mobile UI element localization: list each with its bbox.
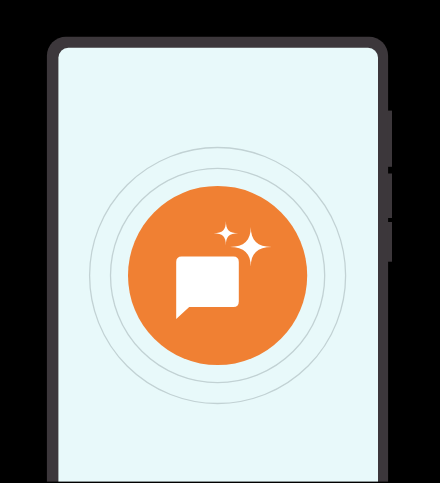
button[interactable]: Open chat app bbox=[128, 186, 307, 365]
